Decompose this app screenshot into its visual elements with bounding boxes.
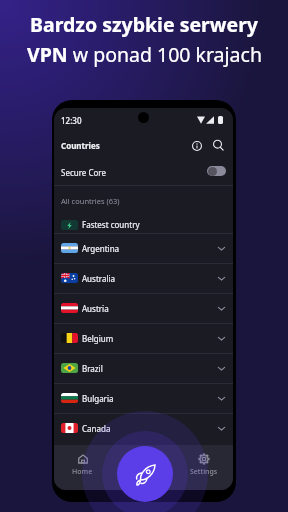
button[interactable]: Argentina <box>54 233 233 263</box>
staticText: All countries (63) <box>61 196 120 206</box>
staticText: 12:30 <box>61 115 82 126</box>
button[interactable]: Brazil <box>54 353 233 383</box>
button[interactable]: Australia <box>54 263 233 293</box>
staticText: Argentina <box>82 243 120 254</box>
button[interactable]: Settings <box>175 445 233 490</box>
button[interactable]: Bulgaria <box>54 383 233 413</box>
staticText: VPN w ponad 100 krajach <box>27 41 262 68</box>
staticText: Home <box>72 467 93 477</box>
button[interactable]: Canada <box>54 413 233 443</box>
staticText: Secure Core <box>61 167 106 178</box>
button[interactable]: Connect <box>117 446 173 502</box>
staticText: Fastest country <box>82 219 140 230</box>
button[interactable]: Belgium <box>54 323 233 353</box>
staticText: Bardzo szybkie serwery <box>30 11 258 38</box>
staticText: Belgium <box>82 333 114 344</box>
staticText: Countries <box>61 140 100 151</box>
button[interactable]: Info <box>187 136 206 155</box>
staticText: Canada <box>82 423 111 434</box>
staticText: Settings <box>190 467 218 477</box>
button[interactable]: Home <box>54 445 111 490</box>
button[interactable]: Search <box>209 136 228 155</box>
staticText: Australia <box>82 273 116 284</box>
button[interactable]: Secure Core <box>54 155 233 186</box>
staticText: Bulgaria <box>82 393 114 404</box>
button[interactable]: Fastest country <box>54 216 233 233</box>
staticText: Austria <box>82 303 109 314</box>
button[interactable]: Austria <box>54 293 233 323</box>
staticText: Brazil <box>82 363 103 374</box>
